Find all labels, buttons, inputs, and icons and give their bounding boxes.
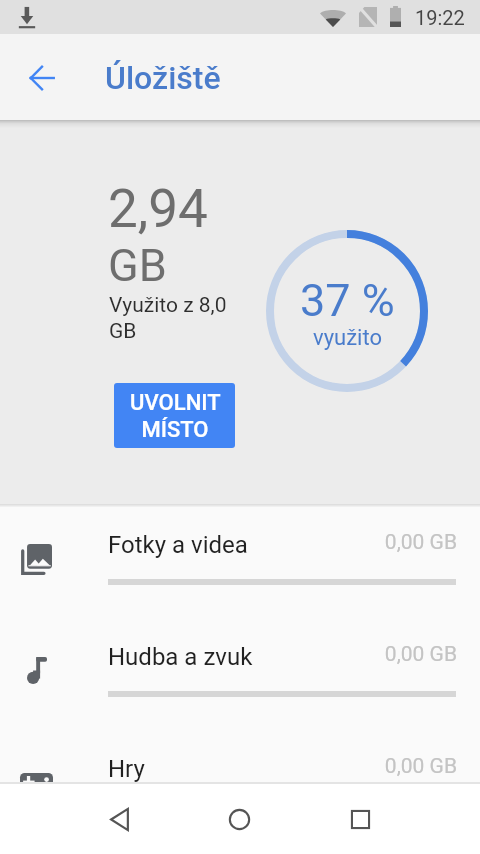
button[interactable]: Back <box>79 784 159 854</box>
staticText: 19:22 <box>415 6 465 29</box>
staticText: 2,94 <box>108 178 208 240</box>
staticText: 0,00 GB <box>300 642 457 667</box>
button[interactable]: UVOLNIT MÍSTO <box>114 383 235 448</box>
staticText: Využito z 8,0 GB <box>109 293 233 343</box>
staticText: 0,00 GB <box>300 754 457 779</box>
staticText: Úložiště <box>105 59 221 97</box>
button[interactable]: Fotky a videa <box>0 508 480 620</box>
staticText: Hudba a zvuk <box>108 643 253 671</box>
button[interactable]: Hudba a zvuk <box>0 620 480 732</box>
button[interactable]: Hry <box>0 732 480 844</box>
staticText: UVOLNIT MÍSTO <box>125 390 225 442</box>
staticText: 37 % <box>300 274 395 327</box>
button[interactable]: Home <box>199 784 279 854</box>
button[interactable]: Recent apps <box>320 784 400 854</box>
staticText: Fotky a videa <box>108 531 248 559</box>
staticText: využito <box>313 325 382 351</box>
staticText: 0,00 GB <box>300 530 457 555</box>
staticText: GB <box>108 239 167 292</box>
staticText: Hry <box>108 755 145 783</box>
button[interactable]: Back <box>18 54 66 102</box>
